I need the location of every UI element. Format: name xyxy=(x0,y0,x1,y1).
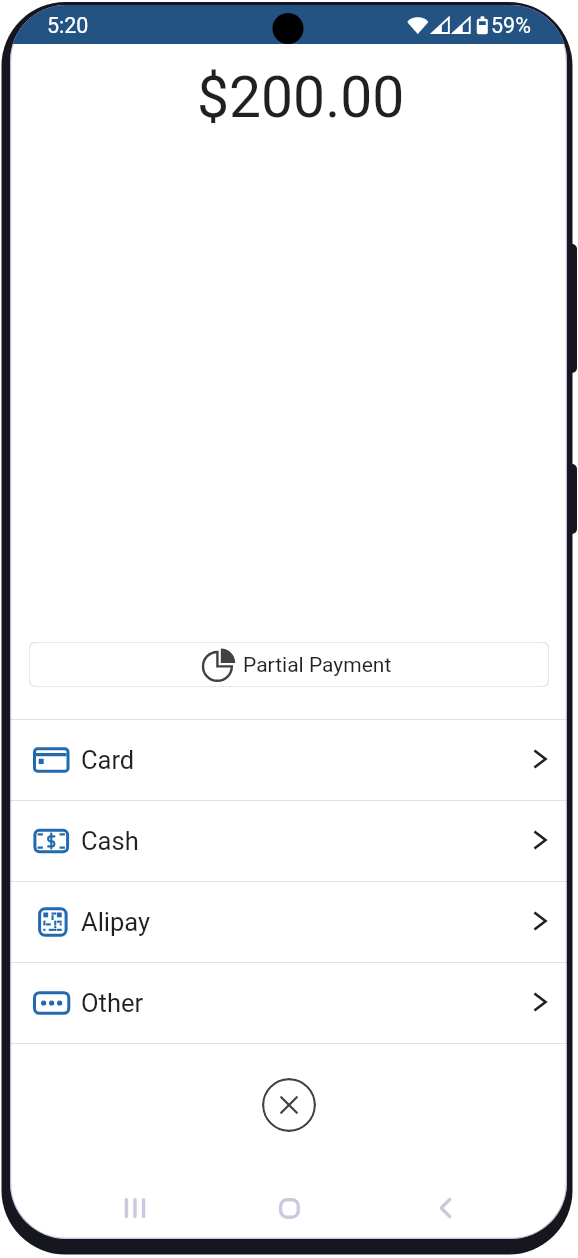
button[interactable]: Other xyxy=(10,963,567,1043)
button[interactable]: Close xyxy=(262,1078,316,1132)
staticText: $200.00 xyxy=(197,64,405,131)
button[interactable]: Card xyxy=(10,720,567,800)
button[interactable]: Cash xyxy=(10,801,567,881)
staticText: 5:20 xyxy=(47,13,89,38)
button[interactable]: Recents xyxy=(112,1193,157,1223)
button[interactable]: Partial Payment xyxy=(29,642,549,687)
staticText: 59% xyxy=(491,13,531,38)
staticText: Card xyxy=(81,745,135,775)
button[interactable]: Home xyxy=(267,1193,312,1223)
staticText: Other xyxy=(81,988,144,1018)
staticText: Cash xyxy=(81,826,139,856)
button[interactable]: Back xyxy=(422,1193,467,1223)
staticText: Alipay xyxy=(81,907,151,937)
button[interactable]: Alipay xyxy=(10,882,567,962)
staticText: Partial Payment xyxy=(243,653,392,678)
